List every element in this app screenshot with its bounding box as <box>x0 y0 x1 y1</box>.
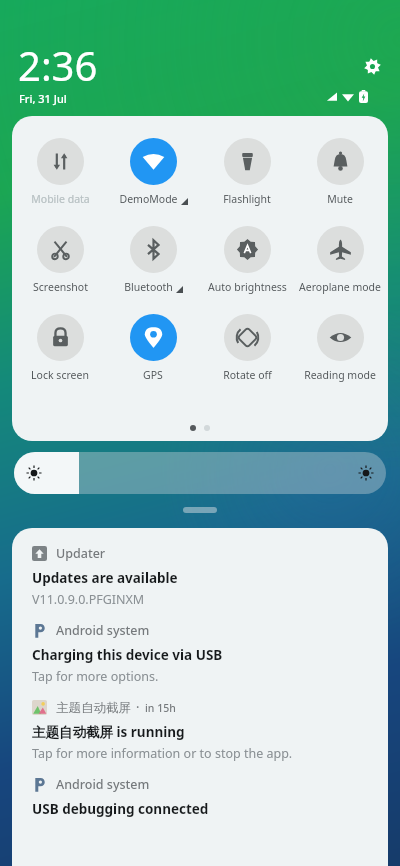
button[interactable]: Android system <box>12 622 388 685</box>
staticText: Rotate off <box>223 368 272 382</box>
button[interactable]: Updater <box>12 545 388 608</box>
staticText: Aeroplane mode <box>299 280 381 294</box>
staticText: Auto brightness <box>208 280 287 294</box>
button[interactable]: Lock screen <box>15 314 105 382</box>
button[interactable]: Settings <box>358 52 386 80</box>
button[interactable]: Android system <box>12 776 388 818</box>
button[interactable]: Mobile data <box>15 138 105 206</box>
staticText: in 15h <box>145 701 176 715</box>
button[interactable]: Flashlight <box>202 138 292 206</box>
staticText: Tap for more information or to stop the … <box>32 745 293 762</box>
button[interactable]: Mute <box>295 138 385 206</box>
staticText: Lock screen <box>31 368 89 382</box>
button[interactable]: Rotate off <box>202 314 292 382</box>
staticText: Mute <box>327 192 353 206</box>
staticText: 主题自动截屏 is running <box>32 723 185 741</box>
button[interactable]: Screenshot <box>15 226 105 294</box>
staticText: Updates are available <box>32 569 178 587</box>
staticText: Updater <box>56 545 106 562</box>
staticText: Mobile data <box>31 192 90 206</box>
button[interactable]: Reading mode <box>295 314 385 382</box>
button[interactable]: DemoMode <box>108 138 198 206</box>
button[interactable]: Brightness <box>14 452 386 494</box>
staticText: · <box>136 699 140 716</box>
button[interactable]: Aeroplane mode <box>295 226 385 294</box>
button[interactable]: Bluetooth <box>108 226 198 294</box>
staticText: Android system <box>56 622 150 639</box>
staticText: Reading mode <box>304 368 376 382</box>
staticText: GPS <box>143 368 163 382</box>
button[interactable]: Auto brightness <box>202 226 292 294</box>
staticText: 2:36 <box>18 38 98 92</box>
staticText: Tap for more options. <box>32 668 159 685</box>
button[interactable]: 主题自动截屏 <box>12 699 388 762</box>
staticText: V11.0.9.0.PFGINXM <box>32 591 145 608</box>
staticText: Fri, 31 Jul <box>19 91 67 106</box>
staticText: DemoMode <box>119 192 178 206</box>
staticText: Android system <box>56 776 150 793</box>
staticText: Bluetooth <box>124 280 173 294</box>
staticText: 主题自动截屏 <box>56 700 131 716</box>
staticText: USB debugging connected <box>32 800 209 818</box>
staticText: Flashlight <box>223 192 271 206</box>
staticText: Screenshot <box>33 280 88 294</box>
button[interactable]: GPS <box>108 314 198 382</box>
staticText: Charging this device via USB <box>32 646 223 664</box>
